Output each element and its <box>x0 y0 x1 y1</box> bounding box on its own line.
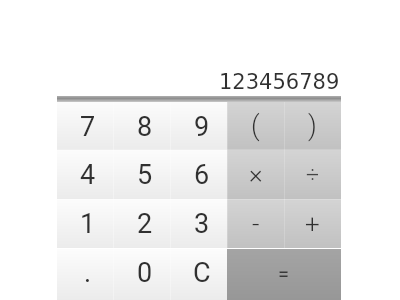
staticText: C <box>193 257 211 289</box>
staticText: 4 <box>80 159 96 191</box>
staticText: 9 <box>194 111 210 143</box>
staticText: 0 <box>137 257 153 289</box>
staticText: × <box>249 159 263 189</box>
staticText: . <box>84 257 92 289</box>
staticText: ÷ <box>306 161 320 188</box>
staticText: 7 <box>80 111 96 143</box>
staticText: 5 <box>137 159 153 191</box>
staticText: ) <box>308 110 317 142</box>
staticText: 6 <box>194 159 210 191</box>
staticText: + <box>305 209 320 239</box>
staticText: 8 <box>137 111 153 143</box>
staticText: 1 <box>80 208 96 240</box>
staticText: 3 <box>194 208 210 240</box>
staticText: 123456789 <box>219 70 340 94</box>
staticText: - <box>252 209 260 239</box>
staticText: = <box>278 262 289 285</box>
staticText: ( <box>251 110 260 142</box>
staticText: 2 <box>137 208 153 240</box>
